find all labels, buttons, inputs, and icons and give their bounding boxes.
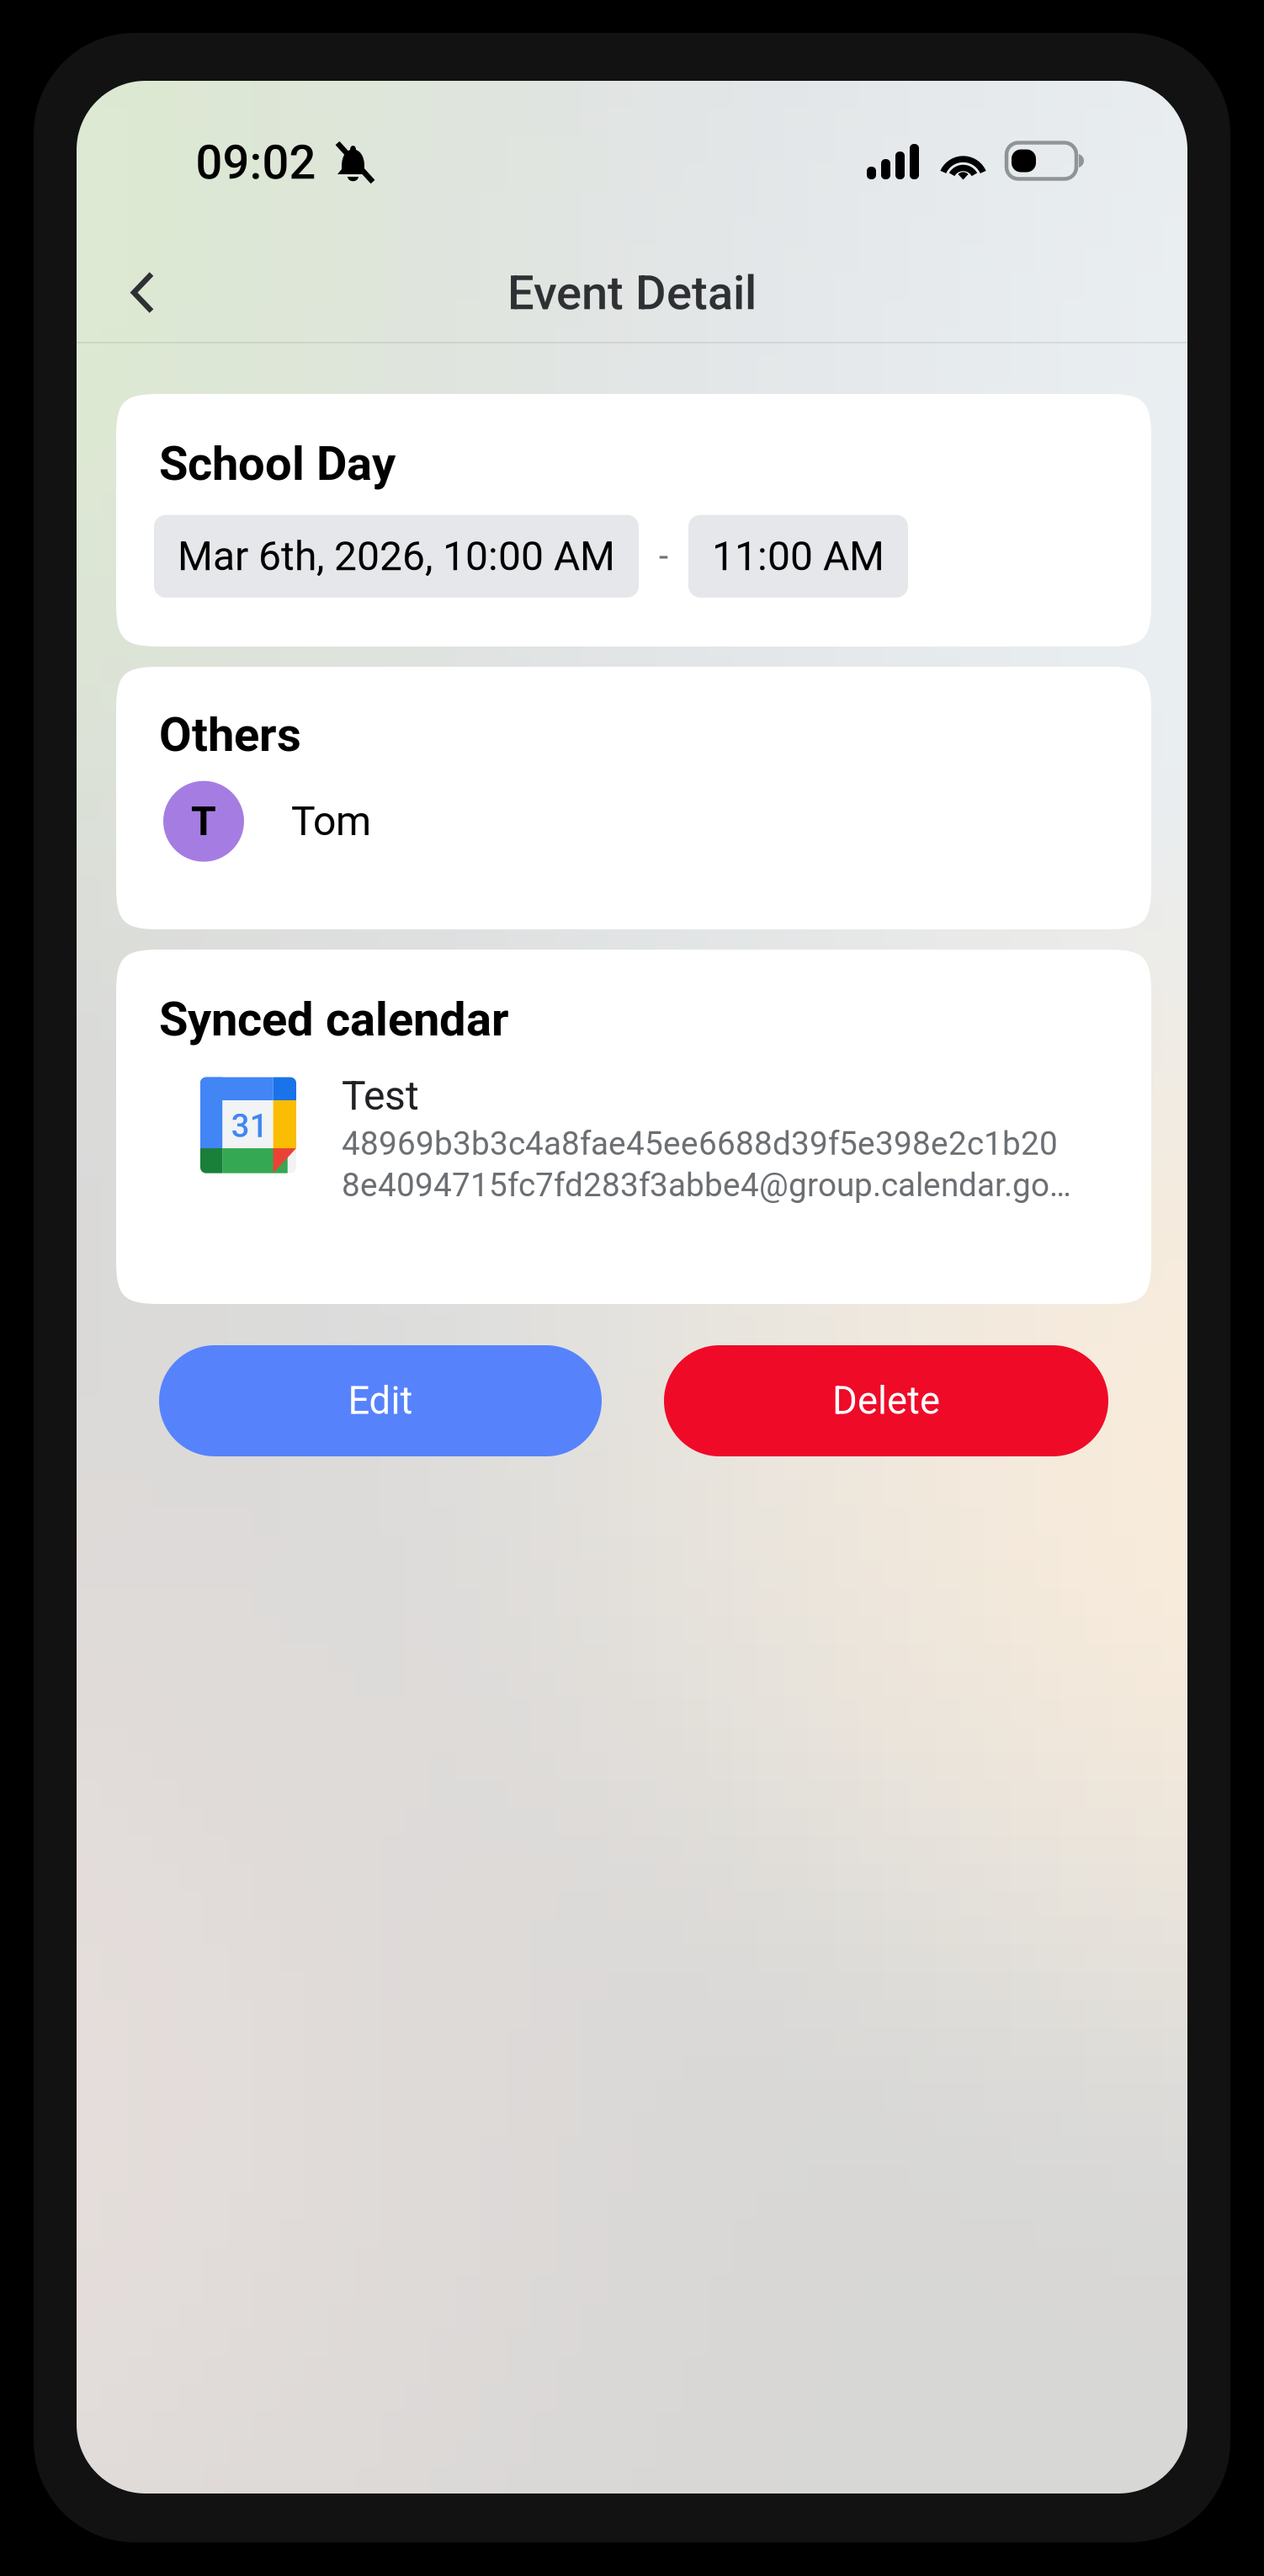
staticText: 11:00 AM bbox=[712, 533, 884, 580]
staticText: School Day bbox=[159, 436, 396, 491]
staticText: Event Detail bbox=[507, 265, 757, 321]
staticText: Mar 6th, 2026, 10:00 AM bbox=[178, 533, 615, 580]
staticText: Edit bbox=[348, 1378, 413, 1423]
staticText: 31 bbox=[231, 1107, 268, 1145]
staticText: 8e4094715fc7fd283f3abbe4@group.calendar.… bbox=[342, 1166, 1071, 1204]
staticText: T bbox=[191, 798, 216, 845]
staticText: Delete bbox=[832, 1378, 940, 1423]
staticText: - bbox=[659, 536, 668, 576]
button[interactable]: Back bbox=[103, 244, 183, 342]
staticText: Tom bbox=[291, 798, 371, 845]
staticText: 09:02 bbox=[196, 135, 316, 190]
staticText: Test bbox=[342, 1072, 419, 1119]
staticText: Synced calendar bbox=[159, 992, 509, 1047]
staticText: Others bbox=[159, 707, 301, 762]
button[interactable]: Delete bbox=[664, 1345, 1108, 1456]
button[interactable]: Edit bbox=[159, 1345, 602, 1456]
staticText: 48969b3b3c4a8fae45ee6688d39f5e398e2c1b20 bbox=[342, 1125, 1058, 1163]
